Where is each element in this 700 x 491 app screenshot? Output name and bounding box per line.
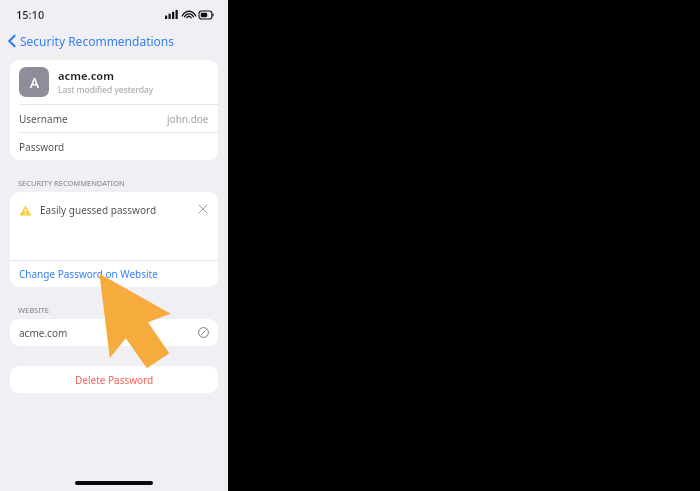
staticText: Easily guessed password (40, 203, 157, 217)
staticText: Delete Password (75, 373, 154, 387)
staticText: Change Password on Website (19, 267, 158, 281)
button[interactable]: Delete Password (10, 366, 218, 393)
staticText: 15:10 (16, 7, 45, 22)
staticText: acme.com (19, 326, 68, 340)
button[interactable]: Username (10, 105, 218, 132)
button[interactable]: A (10, 60, 218, 104)
staticText: A (30, 73, 39, 92)
staticText: SECURITY RECOMMENDATION (18, 178, 125, 188)
staticText: Last modified yesterday (58, 84, 154, 96)
button[interactable]: Password (10, 133, 218, 160)
staticText: acme.com (58, 68, 114, 83)
button[interactable]: Dismiss (195, 201, 211, 217)
button[interactable]: acme.com (10, 319, 218, 346)
staticText: john.doe (167, 112, 209, 126)
staticText: Security Recommendations (20, 33, 174, 49)
other: Open website (198, 327, 209, 338)
staticText: WEBSITE (18, 305, 50, 315)
other: Back (8, 34, 16, 48)
staticText: Password (19, 140, 65, 154)
button[interactable]: Back (0, 28, 228, 54)
staticText: Username (19, 112, 68, 126)
button[interactable]: Change Password on Website (10, 261, 218, 287)
